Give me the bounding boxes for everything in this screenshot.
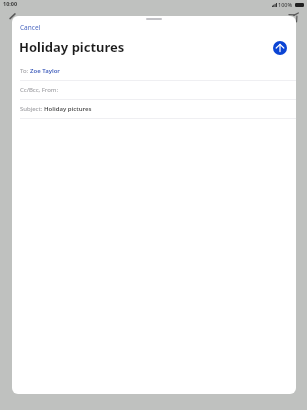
staticText: Holiday pictures [44,105,92,113]
staticText: To: [20,67,29,75]
staticText: Holiday pictures [19,38,125,56]
button[interactable]: Send [273,41,287,55]
button[interactable]: Cc/Bcc, From: [12,81,296,99]
staticText: 100% [278,1,293,8]
staticText: 10:00 [3,0,18,7]
button[interactable]: To: [12,62,296,80]
staticText: Zoe Taylor [30,67,60,75]
staticText: Cc/Bcc, From: [20,86,59,94]
button[interactable]: Cancel [16,21,45,34]
staticText: Subject: [20,105,43,113]
button[interactable]: Subject: [12,100,296,118]
staticText: Cancel [20,23,41,32]
